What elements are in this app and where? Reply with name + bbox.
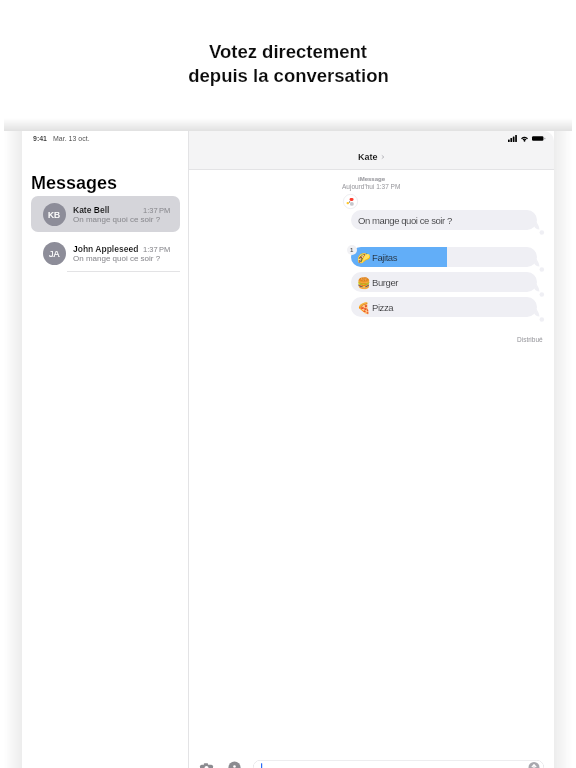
staticText: 1 xyxy=(350,247,354,254)
staticText: Kate Bell xyxy=(73,205,110,214)
staticText: On mange quoi ce soir ? xyxy=(73,215,161,224)
staticText: Pizza xyxy=(372,302,394,313)
staticText: Aujourd'hui 1:37 PM xyxy=(342,183,401,190)
staticText: On mange quoi ce soir ? xyxy=(358,215,452,226)
button[interactable]: Apps xyxy=(226,759,242,768)
staticText: Distribué xyxy=(517,336,543,343)
staticText: John Appleseed xyxy=(73,244,139,253)
staticText: JA xyxy=(49,249,60,259)
staticText: 1:37 PM xyxy=(143,245,171,253)
staticText: Burger xyxy=(372,277,398,288)
staticText: Kate xyxy=(358,152,378,162)
button[interactable]: 🌮 xyxy=(351,247,537,267)
button[interactable]: JA xyxy=(31,235,180,271)
staticText: On mange quoi ce soir ? xyxy=(73,254,161,263)
staticText: Fajitas xyxy=(372,252,398,263)
staticText: 9:41 xyxy=(33,135,48,143)
staticText: depuis la conversation xyxy=(188,65,389,86)
button[interactable]: KB xyxy=(31,196,180,232)
button[interactable]: 🍕 xyxy=(351,297,537,317)
button[interactable] xyxy=(253,760,544,768)
staticText: 🌮 xyxy=(357,252,371,265)
staticText: 🍔 xyxy=(357,277,371,290)
staticText: Mar. 13 oct. xyxy=(53,135,90,143)
staticText: Votez directement xyxy=(209,41,367,62)
staticText: 1:37 PM xyxy=(143,206,171,214)
staticText: iMessage xyxy=(358,176,386,183)
button[interactable]: 🍔 xyxy=(351,272,537,292)
staticText: KB xyxy=(48,210,61,220)
staticText: Messages xyxy=(31,173,118,193)
staticText: 🍕 xyxy=(357,302,371,315)
button[interactable]: Camera xyxy=(198,759,214,768)
